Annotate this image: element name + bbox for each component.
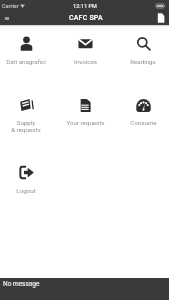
staticText: No message	[3, 280, 40, 288]
button[interactable]: Your requests	[58, 97, 112, 126]
button[interactable]: Open navigation menu	[0, 11, 14, 25]
button[interactable]: Dati anagrafici	[0, 36, 53, 65]
button[interactable]: Consume	[116, 97, 169, 126]
button[interactable]: Readings	[116, 36, 169, 65]
staticText: Invoices	[74, 58, 97, 65]
staticText: Your requests	[66, 119, 105, 126]
button[interactable]: No message	[0, 278, 169, 300]
staticText: Supply & requests	[11, 119, 41, 133]
button[interactable]: Logout	[0, 165, 53, 194]
button[interactable]: Supply & requests	[0, 97, 53, 133]
staticText: Carrier	[2, 3, 19, 9]
staticText: Readings	[130, 58, 156, 65]
staticText: Dati anagrafici	[6, 58, 46, 65]
button[interactable]: Documents	[155, 12, 167, 24]
staticText: CAFC SPA	[69, 14, 103, 22]
staticText: Consume	[130, 119, 157, 126]
button[interactable]: Invoices	[58, 36, 112, 65]
staticText: Logout	[16, 187, 36, 194]
staticText: 12:11 PM	[73, 3, 97, 9]
